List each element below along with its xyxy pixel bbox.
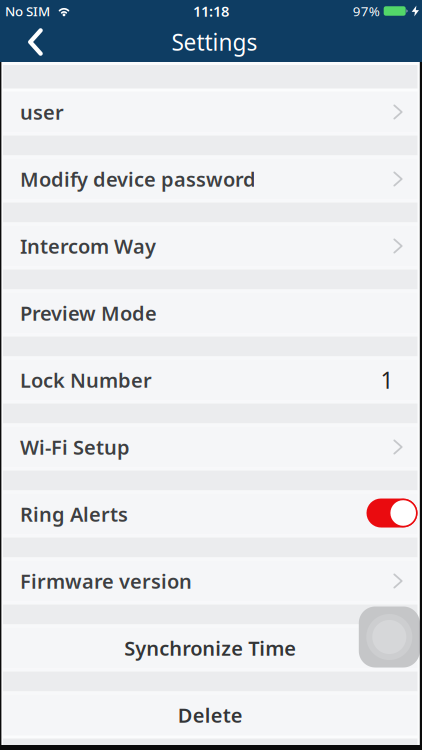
button[interactable]: Back bbox=[0, 28, 43, 56]
button[interactable]: Synchronize Time bbox=[3, 627, 417, 668]
button[interactable]: Delete bbox=[3, 694, 417, 735]
button[interactable]: Firmware version bbox=[3, 560, 417, 601]
button[interactable]: Intercom Way bbox=[3, 225, 417, 266]
button[interactable]: Ring Alerts bbox=[3, 493, 417, 534]
staticText: No SIM bbox=[5, 2, 50, 20]
staticText: Preview Mode bbox=[20, 300, 157, 326]
button[interactable]: Modify device password bbox=[3, 158, 417, 199]
staticText: Delete bbox=[178, 702, 243, 728]
button[interactable]: Preview Mode bbox=[3, 292, 417, 333]
button[interactable]: Wi-Fi Setup bbox=[3, 426, 417, 467]
button[interactable]: Lock Number bbox=[3, 359, 417, 400]
staticText: Synchronize Time bbox=[124, 635, 296, 661]
staticText: 11:18 bbox=[193, 1, 229, 21]
staticText: Ring Alerts bbox=[20, 501, 128, 527]
staticText: 1 bbox=[380, 365, 393, 395]
button[interactable]: user bbox=[3, 91, 417, 132]
staticText: Firmware version bbox=[20, 568, 192, 594]
staticText: Settings bbox=[171, 27, 257, 57]
staticText: Intercom Way bbox=[20, 233, 156, 259]
staticText: Lock Number bbox=[20, 367, 152, 393]
button[interactable]: AssistiveTouch bbox=[359, 606, 420, 667]
staticText: Modify device password bbox=[20, 166, 256, 192]
staticText: 97% bbox=[353, 2, 380, 20]
staticText: Wi-Fi Setup bbox=[20, 434, 130, 460]
staticText: user bbox=[20, 99, 64, 125]
